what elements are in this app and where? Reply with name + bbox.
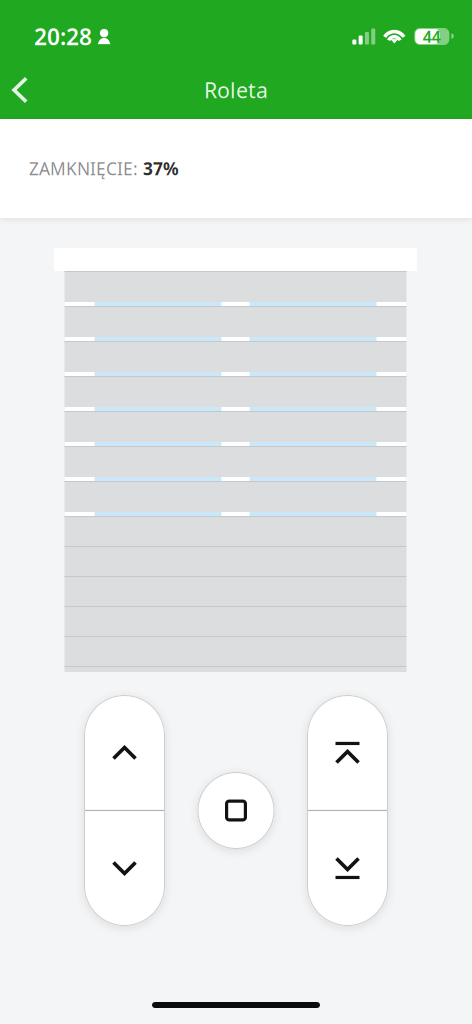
staticText: 20:28 bbox=[34, 21, 92, 51]
button[interactable]: Close fully bbox=[307, 810, 388, 925]
staticText: Roleta bbox=[204, 76, 268, 104]
button[interactable]: Open fully bbox=[307, 695, 388, 810]
staticText: 37% bbox=[143, 157, 179, 180]
button[interactable]: Stop bbox=[197, 772, 274, 849]
staticText: ZAMKNIĘCIE: bbox=[29, 157, 143, 180]
staticText: 44 bbox=[423, 26, 441, 47]
button[interactable]: Close bbox=[84, 810, 165, 925]
button[interactable]: Back bbox=[10, 64, 56, 116]
button[interactable]: Open bbox=[84, 695, 165, 810]
